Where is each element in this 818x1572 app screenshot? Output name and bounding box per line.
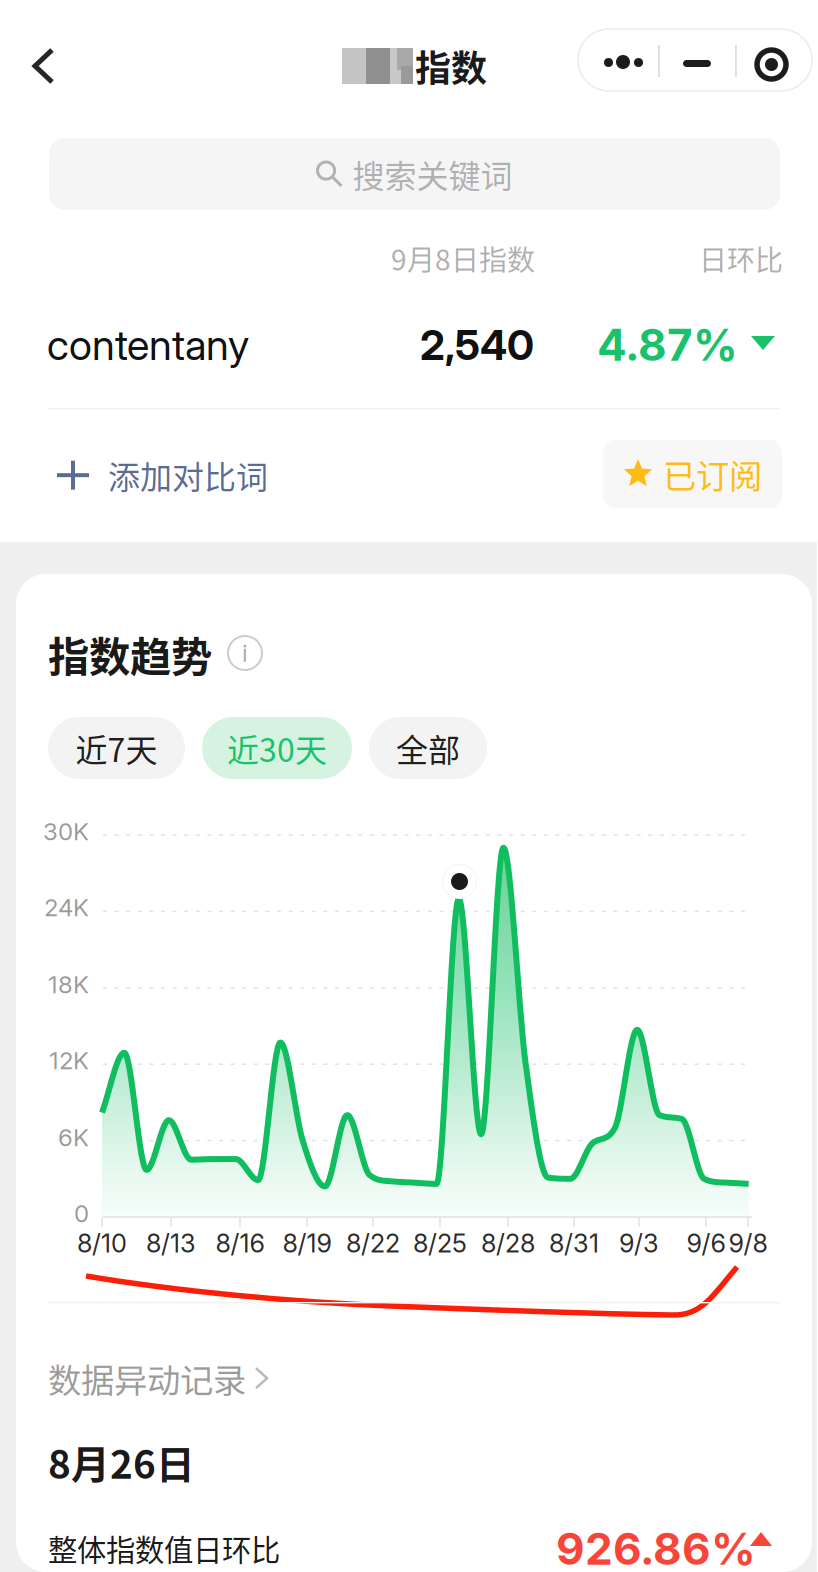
- staticText: 近30天: [227, 725, 327, 771]
- staticText: 18K: [48, 970, 89, 999]
- staticText: 2,540: [420, 320, 534, 370]
- staticText: 4.87%: [597, 318, 738, 371]
- staticText: 8/22: [346, 1228, 400, 1259]
- staticText: 926.86%: [556, 1522, 756, 1572]
- button[interactable]: 近30天: [202, 717, 352, 779]
- button[interactable]: 数据异动记录: [40, 1346, 275, 1410]
- staticText: 9/6: [686, 1228, 725, 1259]
- button[interactable]: Info: [228, 636, 262, 670]
- staticText: 8月26日: [48, 1434, 195, 1490]
- staticText: contentany: [47, 320, 249, 370]
- staticText: 8/25: [413, 1228, 467, 1259]
- staticText: 搜索关键词: [352, 151, 512, 197]
- staticText: 添加对比词: [108, 452, 268, 498]
- staticText: 6K: [58, 1123, 89, 1152]
- staticText: 9月8日指数: [391, 238, 535, 278]
- button[interactable]: 搜索关键词: [49, 138, 780, 210]
- button[interactable]: More: [578, 29, 658, 91]
- staticText: 全部: [396, 725, 460, 771]
- staticText: i: [242, 638, 248, 667]
- button[interactable]: 全部: [369, 717, 487, 779]
- staticText: 日环比: [699, 238, 783, 278]
- staticText: 24K: [44, 893, 89, 922]
- button[interactable]: Minimize: [660, 29, 736, 91]
- staticText: 12K: [49, 1046, 89, 1075]
- button[interactable]: Back: [7, 29, 81, 103]
- button[interactable]: 近7天: [48, 717, 185, 779]
- staticText: 已订阅: [663, 450, 762, 498]
- staticText: 8/13: [146, 1228, 196, 1259]
- staticText: 数据异动记录: [48, 1354, 246, 1402]
- staticText: 近7天: [75, 725, 157, 771]
- staticText: 整体指数值日环比: [48, 1527, 280, 1569]
- staticText: 指数: [415, 40, 487, 92]
- staticText: 9/3: [619, 1228, 659, 1259]
- staticText: 9/8: [728, 1228, 767, 1259]
- staticText: 8/31: [549, 1228, 599, 1259]
- staticText: 8/19: [282, 1228, 331, 1259]
- staticText: 8/28: [481, 1228, 535, 1259]
- button[interactable]: 已订阅: [603, 440, 782, 508]
- staticText: 指数趋势: [48, 624, 212, 684]
- staticText: 8/10: [77, 1228, 127, 1259]
- staticText: 30K: [43, 817, 89, 846]
- staticText: 0: [74, 1199, 89, 1228]
- button[interactable]: Close: [737, 29, 811, 91]
- staticText: 8/16: [215, 1228, 264, 1259]
- button[interactable]: 添加对比词: [45, 440, 280, 510]
